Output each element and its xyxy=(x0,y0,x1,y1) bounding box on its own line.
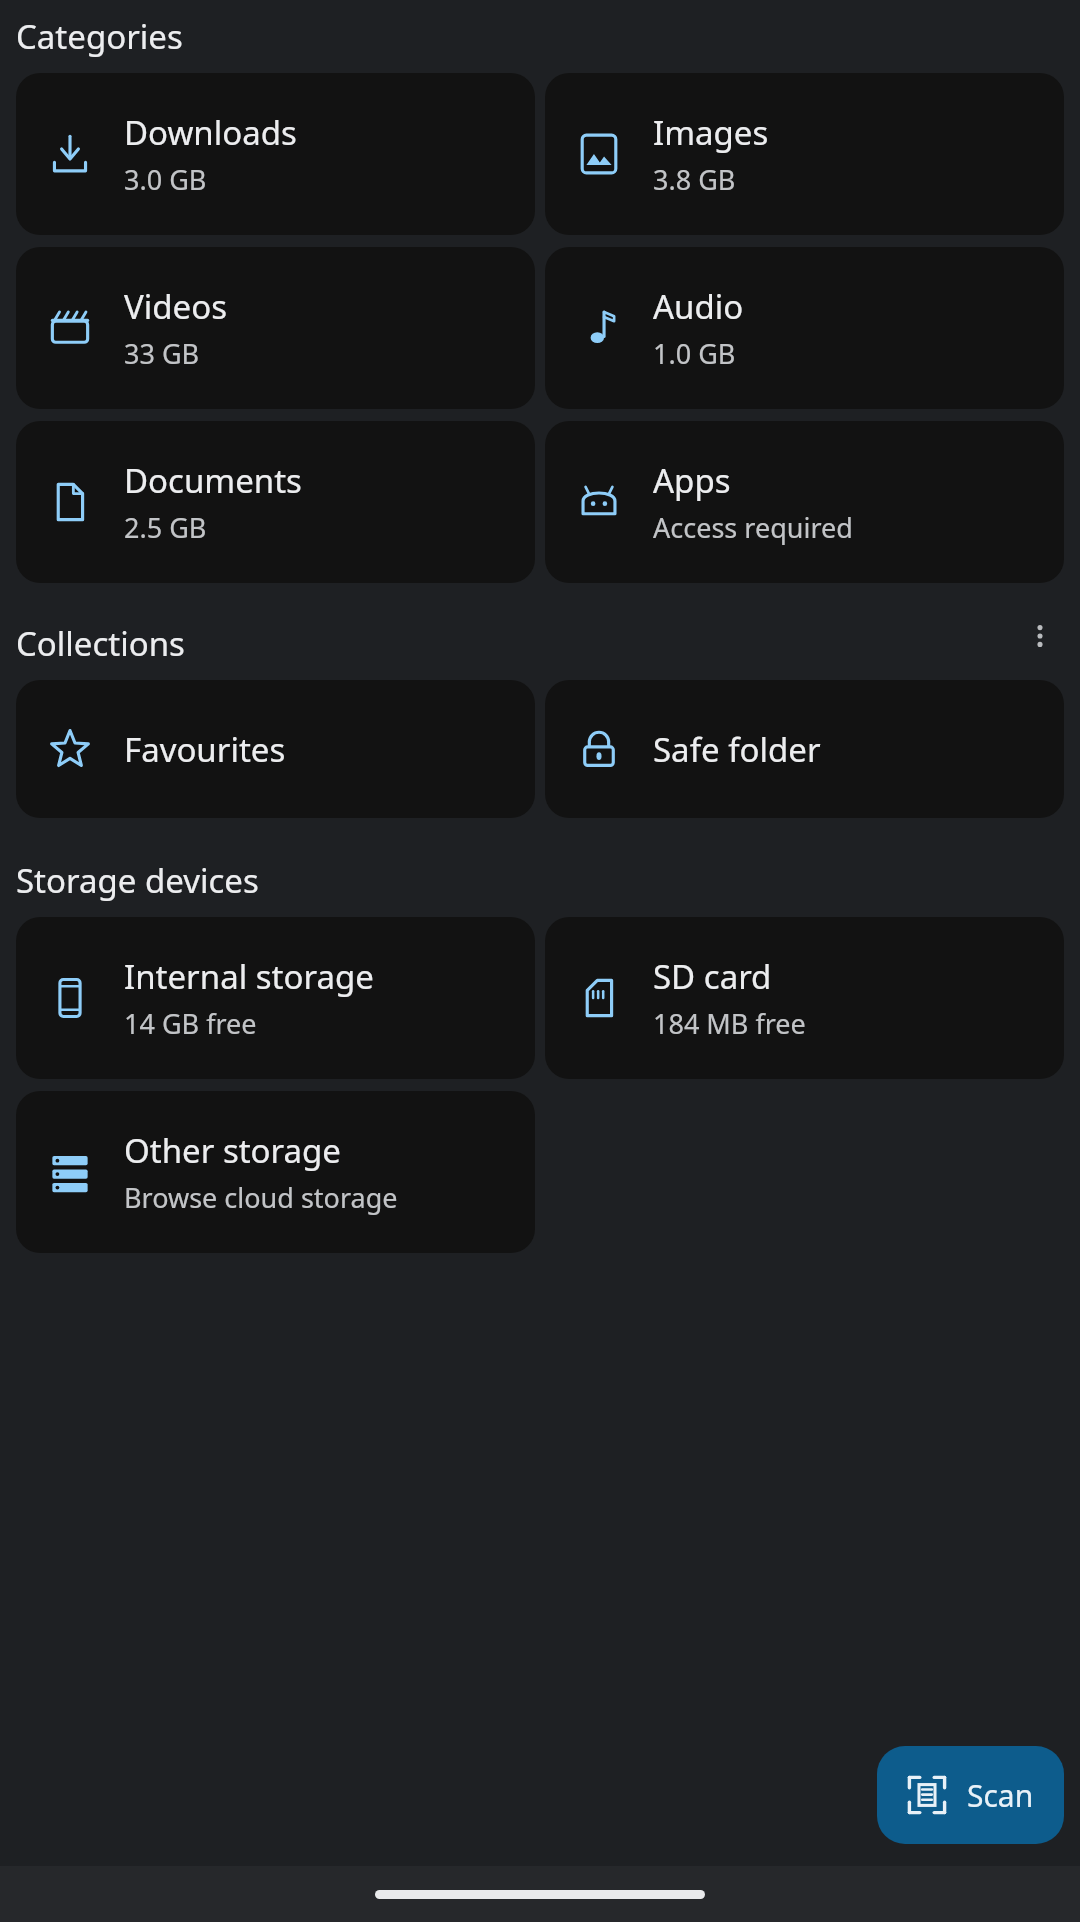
staticText: 33 GB xyxy=(124,335,200,372)
staticText: Images xyxy=(653,110,769,155)
button[interactable]: Images xyxy=(545,73,1064,235)
button[interactable]: Audio xyxy=(545,247,1064,409)
button[interactable]: Scan xyxy=(877,1746,1064,1844)
staticText: Audio xyxy=(653,284,744,329)
staticText: Categories xyxy=(16,14,183,59)
button[interactable]: Other storage xyxy=(16,1091,535,1253)
staticText: Storage devices xyxy=(16,858,259,903)
button[interactable]: Videos xyxy=(16,247,535,409)
staticText: 3.0 GB xyxy=(124,161,207,198)
staticText: 14 GB free xyxy=(124,1005,257,1042)
staticText: Collections xyxy=(16,621,185,666)
staticText: Downloads xyxy=(124,110,297,155)
button[interactable]: Internal storage xyxy=(16,917,535,1079)
staticText: Documents xyxy=(124,458,302,503)
staticText: Apps xyxy=(653,458,731,503)
staticText: Access required xyxy=(653,509,853,546)
staticText: Videos xyxy=(124,284,227,329)
staticText: SD card xyxy=(653,954,772,999)
button[interactable]: Documents xyxy=(16,421,535,583)
button[interactable]: More options xyxy=(1016,612,1064,660)
button[interactable]: Apps xyxy=(545,421,1064,583)
staticText: 184 MB free xyxy=(653,1005,806,1042)
button[interactable]: Downloads xyxy=(16,73,535,235)
button[interactable]: SD card xyxy=(545,917,1064,1079)
staticText: 2.5 GB xyxy=(124,509,207,546)
staticText: 1.0 GB xyxy=(653,335,736,372)
button[interactable]: Favourites xyxy=(16,680,535,818)
staticText: Scan xyxy=(967,1775,1034,1816)
staticText: Browse cloud storage xyxy=(124,1179,398,1216)
staticText: Internal storage xyxy=(124,954,374,999)
staticText: Safe folder xyxy=(653,727,821,772)
staticText: Other storage xyxy=(124,1128,341,1173)
staticText: Favourites xyxy=(124,727,286,772)
button[interactable]: Safe folder xyxy=(545,680,1064,818)
staticText: 3.8 GB xyxy=(653,161,736,198)
